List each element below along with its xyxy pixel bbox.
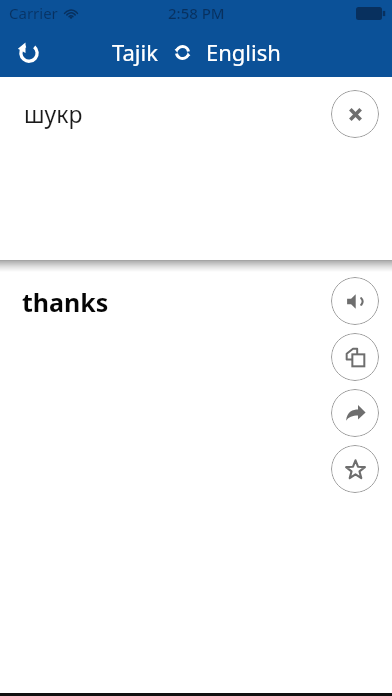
- staticText: Tajik: [112, 37, 158, 67]
- button[interactable]: History: [7, 30, 51, 74]
- button[interactable]: Swap languages: [164, 34, 200, 70]
- button[interactable]: Tajik: [106, 32, 164, 72]
- button[interactable]: English: [200, 32, 287, 72]
- button[interactable]: Share: [331, 389, 379, 437]
- staticText: шукр: [24, 98, 83, 129]
- button[interactable]: Add to favorites: [331, 445, 379, 493]
- button[interactable]: Copy: [331, 333, 379, 381]
- staticText: thanks: [22, 285, 109, 319]
- button[interactable]: Listen: [331, 277, 379, 325]
- staticText: Carrier: [9, 3, 58, 23]
- button[interactable]: Clear text: [331, 90, 379, 138]
- staticText: 2:58 PM: [168, 3, 225, 23]
- button[interactable]: Translate: [328, 280, 380, 332]
- staticText: English: [206, 37, 281, 67]
